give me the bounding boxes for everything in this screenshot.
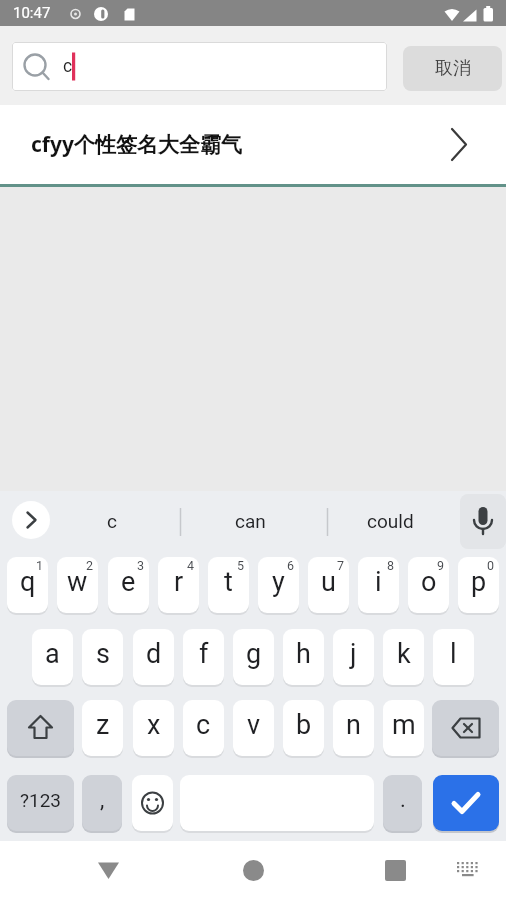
button[interactable]: a <box>32 629 73 685</box>
staticText: 9 <box>437 558 445 573</box>
staticText: b <box>296 709 312 741</box>
button[interactable]: s <box>82 629 123 685</box>
button[interactable] <box>78 841 138 900</box>
staticText: 2 <box>86 558 94 573</box>
staticText: 7 <box>337 558 345 573</box>
button[interactable]: k <box>383 629 424 685</box>
staticText: could <box>367 510 414 532</box>
button[interactable]: i <box>358 557 399 613</box>
button[interactable]: , <box>82 775 122 831</box>
button[interactable] <box>432 700 499 756</box>
staticText: p <box>471 566 487 598</box>
staticText: 5 <box>237 558 245 573</box>
button[interactable] <box>448 841 488 900</box>
button[interactable]: can <box>181 491 319 551</box>
button[interactable]: could <box>327 491 453 551</box>
staticText: , <box>100 787 105 813</box>
staticText: j <box>350 638 357 670</box>
staticText: n <box>346 709 361 741</box>
button[interactable]: t <box>208 557 249 613</box>
staticText: f <box>199 638 209 670</box>
staticText: 6 <box>287 558 295 573</box>
staticText: z <box>96 709 110 741</box>
staticText: c <box>63 56 73 77</box>
staticText: 0 <box>487 558 495 573</box>
staticText: q <box>20 566 36 598</box>
button[interactable]: h <box>283 629 324 685</box>
button[interactable]: y <box>258 557 299 613</box>
button[interactable]: n <box>333 700 374 756</box>
staticText: h <box>296 638 311 670</box>
button[interactable] <box>7 700 74 756</box>
button[interactable]: j <box>333 629 374 685</box>
staticText: i <box>375 566 382 598</box>
button[interactable] <box>365 841 425 900</box>
staticText: 1 <box>36 558 44 573</box>
button[interactable]: u <box>308 557 349 613</box>
staticText: y <box>272 566 285 598</box>
staticText: ?123 <box>20 789 62 811</box>
staticText: 8 <box>387 558 395 573</box>
staticText: v <box>247 709 261 741</box>
staticText: 取消 <box>435 57 471 80</box>
staticText: w <box>67 566 88 598</box>
button[interactable] <box>433 775 499 831</box>
button[interactable]: . <box>383 775 422 831</box>
button[interactable]: 取消 <box>403 46 502 91</box>
button[interactable]: p <box>458 557 499 613</box>
staticText: 10:47 <box>13 4 51 22</box>
button[interactable]: c <box>12 42 387 91</box>
staticText: e <box>121 566 136 598</box>
button[interactable]: c <box>183 700 224 756</box>
staticText: a <box>45 638 60 670</box>
button[interactable] <box>132 775 173 831</box>
staticText: u <box>321 566 336 598</box>
staticText: cfyy个性签名大全霸气 <box>31 130 242 159</box>
button[interactable]: f <box>183 629 224 685</box>
staticText: g <box>246 638 262 670</box>
button[interactable]: w <box>57 557 98 613</box>
button[interactable]: m <box>383 700 424 756</box>
button[interactable]: e <box>108 557 149 613</box>
staticText: l <box>450 638 457 670</box>
button[interactable]: d <box>133 629 174 685</box>
staticText: d <box>146 638 162 670</box>
staticText: k <box>397 638 411 670</box>
button[interactable]: ?123 <box>7 775 74 831</box>
button[interactable]: c <box>62 491 162 551</box>
button[interactable]: g <box>233 629 274 685</box>
staticText: t <box>224 566 233 598</box>
button[interactable]: cfyy个性签名大全霸气 <box>0 105 506 184</box>
button[interactable] <box>223 841 283 900</box>
button[interactable] <box>12 501 50 539</box>
button[interactable]: z <box>82 700 123 756</box>
button[interactable]: q <box>7 557 48 613</box>
staticText: 3 <box>137 558 145 573</box>
staticText: c <box>107 510 117 532</box>
staticText: . <box>400 787 406 813</box>
staticText: x <box>147 709 161 741</box>
button[interactable]: r <box>158 557 199 613</box>
staticText: 4 <box>187 558 195 573</box>
button[interactable]: o <box>408 557 449 613</box>
staticText: c <box>196 709 211 741</box>
button[interactable]: l <box>433 629 474 685</box>
button[interactable]: x <box>133 700 174 756</box>
button[interactable]: v <box>233 700 274 756</box>
button[interactable] <box>460 494 506 549</box>
staticText: m <box>392 709 416 741</box>
staticText: r <box>174 566 184 598</box>
button[interactable]: b <box>283 700 324 756</box>
staticText: o <box>421 566 437 598</box>
staticText: can <box>235 510 266 532</box>
staticText: s <box>96 638 110 670</box>
